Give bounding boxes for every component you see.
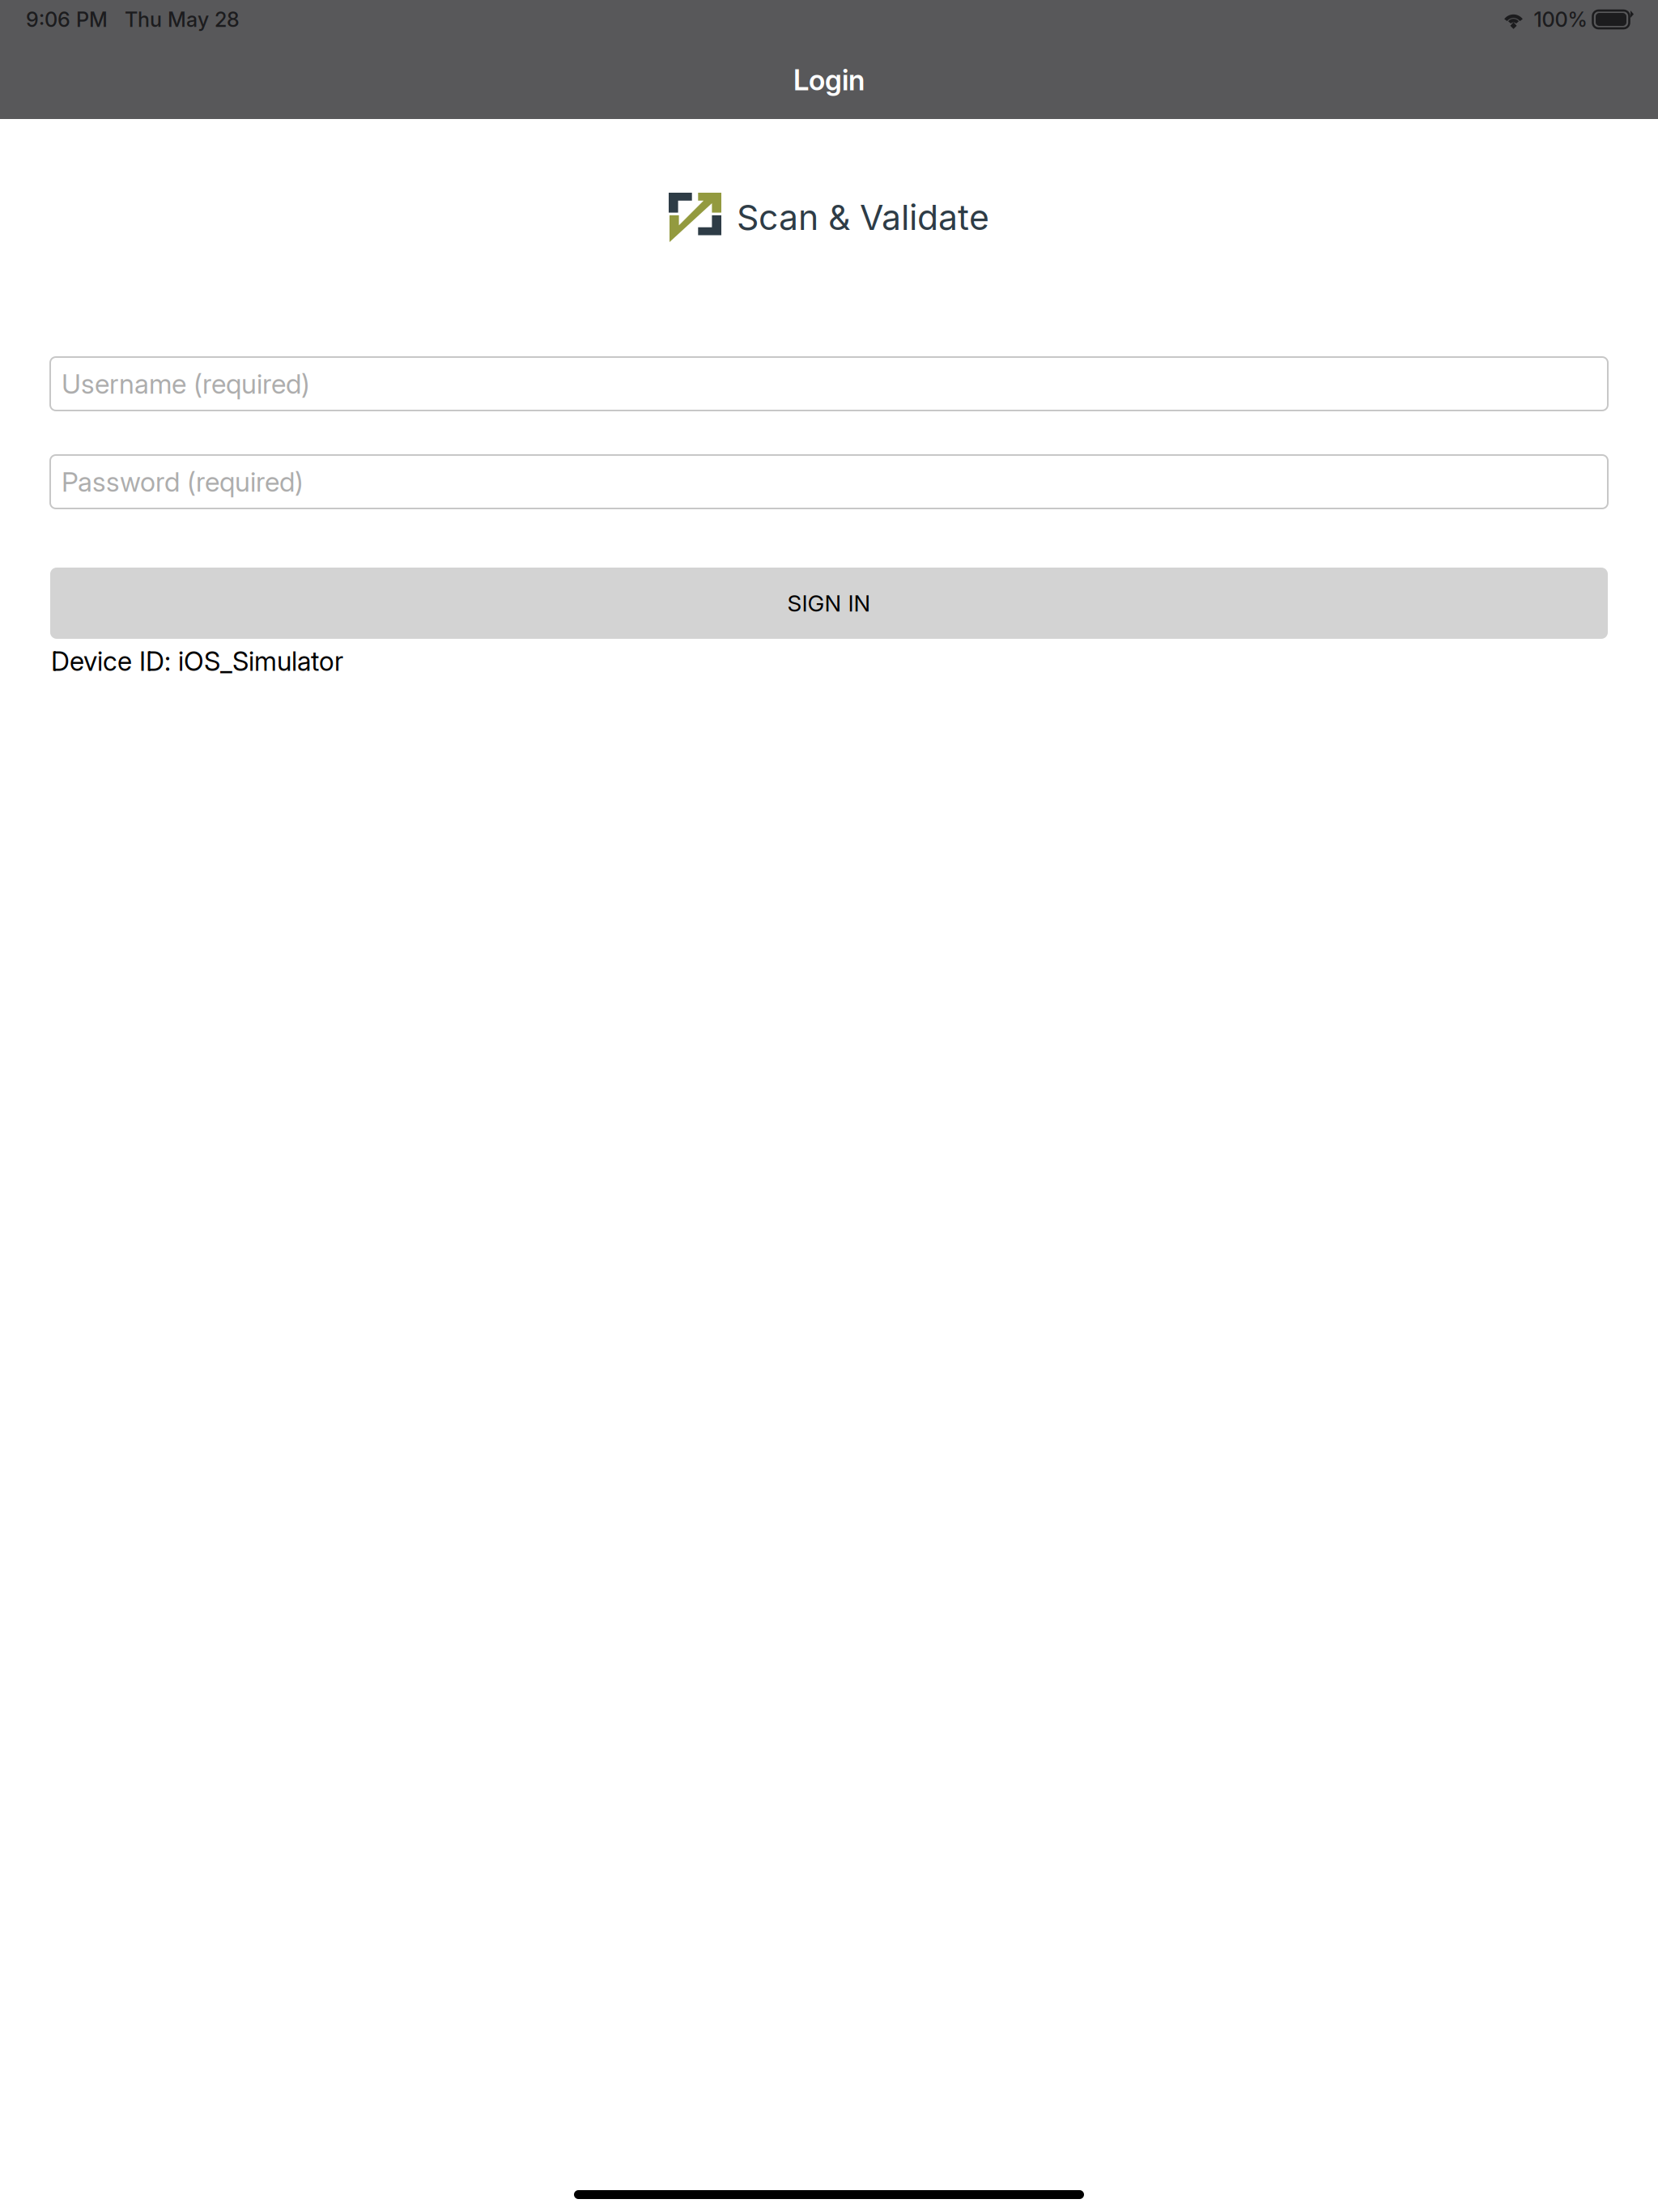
staticText: Username (required) bbox=[62, 367, 310, 400]
button[interactable]: Password (required) bbox=[50, 455, 1608, 508]
staticText: Login bbox=[793, 63, 865, 97]
staticText: Password (required) bbox=[62, 465, 304, 498]
staticText: SIGN IN bbox=[787, 590, 871, 617]
button[interactable]: Username (required) bbox=[50, 357, 1608, 410]
staticText: Thu May 28 bbox=[125, 7, 240, 32]
staticText: 100% bbox=[1534, 7, 1587, 32]
button[interactable]: SIGN IN bbox=[50, 568, 1608, 639]
staticText: 9:06 PM bbox=[26, 7, 108, 32]
staticText: Device ID: iOS_Simulator bbox=[51, 645, 343, 677]
staticText: Scan & Validate bbox=[737, 197, 989, 238]
